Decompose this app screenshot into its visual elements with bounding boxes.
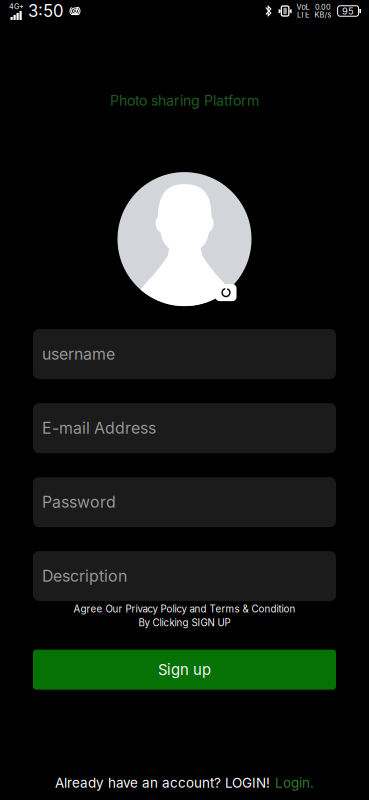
staticText: 95 (342, 5, 354, 17)
staticText: Photo sharing Platform (110, 92, 259, 109)
button[interactable]: E-mail Address (33, 403, 336, 453)
button[interactable]: Description (33, 551, 336, 601)
button[interactable]: Change profile photo (117, 172, 251, 306)
staticText: 4G+ (9, 2, 24, 11)
staticText: Description (42, 566, 127, 586)
staticText: By Clicking SIGN UP (138, 617, 230, 629)
staticText: Already have an account? LOGIN! (55, 775, 270, 791)
staticText: 3:50 (28, 1, 64, 21)
staticText: Password (42, 492, 116, 512)
staticText: Sign up (158, 661, 211, 679)
staticText: Login. (275, 775, 314, 791)
button[interactable]: Password (33, 477, 336, 527)
button[interactable]: username (33, 329, 336, 379)
staticText: E-mail Address (42, 418, 156, 438)
staticText: KB/s (315, 10, 332, 19)
button[interactable]: Login. (275, 775, 314, 791)
staticText: username (42, 344, 115, 364)
button[interactable]: Sign up (33, 650, 336, 690)
staticText: Agree Our Privacy Policy and Terms & Con… (73, 603, 295, 615)
staticText: LTE (297, 10, 309, 19)
staticText: VoL (297, 3, 310, 11)
staticText: 0.00 (315, 3, 331, 11)
